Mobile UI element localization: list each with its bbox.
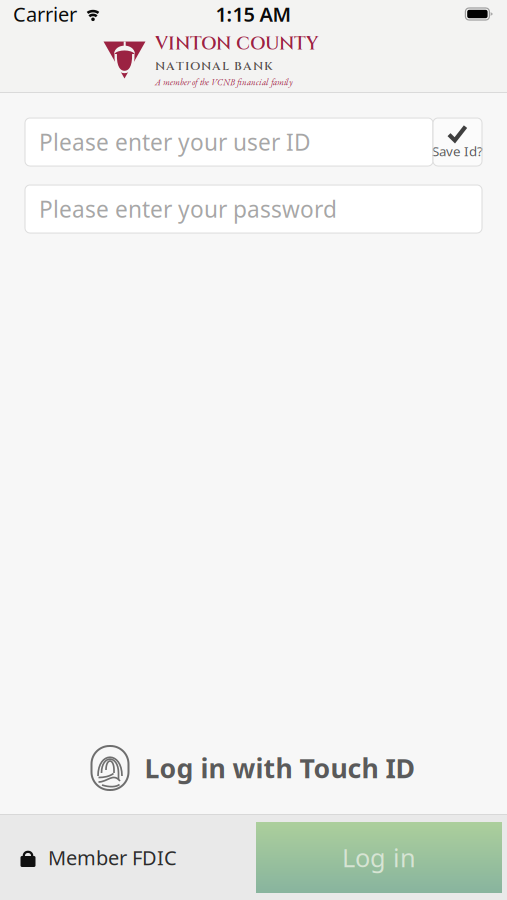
button[interactable]: Log in with Touch ID	[0, 722, 507, 814]
staticText: Log in	[342, 841, 416, 874]
staticText: A member of the VCNB financial family	[155, 76, 293, 88]
staticText: Please enter your user ID	[39, 127, 311, 157]
staticText: Carrier	[13, 1, 77, 27]
staticText: N A T I O N A L B A N K	[155, 58, 273, 74]
staticText: VINTON COUNTY	[155, 32, 318, 56]
staticText: Please enter your password	[39, 194, 337, 224]
staticText: 1:15 AM	[215, 1, 291, 27]
button[interactable]: Save Id?	[433, 118, 482, 166]
staticText: Save Id?	[432, 142, 483, 160]
staticText: Log in with Touch ID	[144, 750, 415, 786]
button[interactable]: Log in	[256, 822, 502, 893]
staticText: Member FDIC	[48, 844, 177, 871]
